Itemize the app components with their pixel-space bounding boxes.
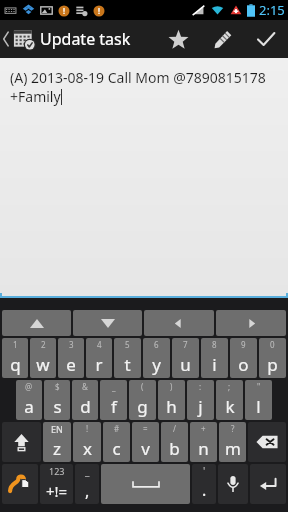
staticText: ; [228, 381, 231, 392]
staticText: $ [55, 381, 60, 392]
staticText: 2:15 [259, 1, 285, 19]
staticText: ' [203, 464, 206, 478]
button[interactable]: / [161, 422, 188, 462]
staticText: j [198, 395, 203, 418]
staticText: n [198, 437, 209, 460]
button[interactable]: Backspace [248, 422, 286, 462]
staticText: / [173, 423, 176, 434]
button[interactable]: _ [75, 464, 99, 504]
button[interactable]: 9 [230, 338, 257, 378]
button[interactable]: : [187, 380, 214, 420]
button[interactable]: ; [216, 380, 243, 420]
staticText: +!= [46, 481, 68, 501]
staticText: @ [25, 381, 33, 392]
button[interactable]: Edit [200, 20, 244, 58]
button[interactable]: 3 [58, 338, 84, 378]
staticText: ( [141, 381, 144, 392]
staticText: f [111, 395, 117, 418]
staticText: e [66, 353, 76, 376]
button[interactable]: 4 [86, 338, 112, 378]
staticText: z [53, 437, 61, 460]
staticText: t [124, 353, 131, 376]
staticText: k [225, 395, 235, 418]
staticText: 7 [183, 339, 188, 350]
staticText: + [201, 423, 206, 434]
staticText: v [141, 437, 150, 460]
staticText: s [53, 395, 62, 418]
staticText: ! [86, 423, 89, 434]
staticText: = [143, 423, 148, 434]
button[interactable]: Enter [250, 464, 286, 504]
button[interactable]: " [245, 380, 272, 420]
button[interactable]: 7 [172, 338, 199, 378]
staticText: _ [112, 381, 116, 392]
button[interactable]: Done [244, 20, 288, 58]
button[interactable]: 0 [259, 338, 286, 378]
staticText: 9 [241, 339, 246, 350]
staticText: 5 [125, 339, 130, 350]
button[interactable]: 1 [2, 338, 28, 378]
button[interactable]: 2 [30, 338, 56, 378]
button[interactable]: Left [144, 310, 214, 336]
button[interactable]: _ [100, 380, 127, 420]
staticText: +Family [10, 87, 61, 106]
staticText: 1 [13, 339, 18, 350]
button[interactable]: $ [44, 380, 70, 420]
button[interactable]: EN [43, 422, 71, 462]
button[interactable]: ) [158, 380, 185, 420]
staticText: u [180, 353, 191, 376]
staticText: 6 [154, 339, 159, 350]
staticText: 2 [41, 339, 46, 350]
staticText: w [36, 353, 50, 376]
button[interactable]: ( [129, 380, 156, 420]
button[interactable]: 8 [201, 338, 228, 378]
button[interactable]: # [103, 422, 130, 462]
staticText: h [166, 395, 177, 418]
staticText: m [225, 437, 241, 460]
button[interactable]: Shift [2, 422, 41, 462]
staticText: x [83, 437, 92, 460]
button[interactable]: Right [216, 310, 286, 336]
button[interactable]: Up [2, 310, 71, 336]
button[interactable]: & [72, 380, 98, 420]
staticText: (A) 2013-08-19 Call Mom @7890815178 [10, 68, 266, 87]
button[interactable]: = [132, 422, 159, 462]
button[interactable]: 5 [114, 338, 141, 378]
staticText: ? [231, 423, 235, 434]
staticText: g [137, 395, 148, 418]
button[interactable]: Gesture typing [2, 464, 38, 504]
button[interactable]: Priority star [156, 20, 200, 58]
button[interactable]: @ [16, 380, 42, 420]
button[interactable]: ' [192, 464, 216, 504]
staticText: ) [170, 381, 173, 392]
staticText: # [114, 423, 120, 434]
staticText: 4 [97, 339, 102, 350]
staticText: 3 [69, 339, 74, 350]
staticText: p [267, 353, 278, 376]
button[interactable]: Space [101, 464, 190, 504]
staticText: r [95, 353, 103, 376]
button[interactable]: 123 [40, 464, 73, 504]
staticText: y [152, 353, 161, 376]
staticText: b [169, 437, 180, 460]
button[interactable]: ! [73, 422, 101, 462]
button[interactable]: (A) 2013-08-19 Call Mom @7890815178 [0, 58, 288, 298]
staticText: d [80, 395, 91, 418]
button[interactable]: Navigate up [0, 27, 42, 51]
button[interactable]: Down [73, 310, 142, 336]
staticText: o [238, 353, 249, 376]
staticText: 123 [49, 465, 65, 477]
staticText: i [212, 353, 217, 376]
button[interactable]: Voice input [218, 464, 248, 504]
button[interactable]: + [190, 422, 217, 462]
button[interactable]: ? [219, 422, 246, 462]
button[interactable]: 6 [143, 338, 170, 378]
staticText: 0 [270, 339, 275, 350]
staticText: c [112, 437, 121, 460]
staticText: " [257, 381, 261, 392]
staticText: . [202, 479, 207, 501]
staticText: Update task [40, 28, 131, 50]
staticText: : [199, 381, 202, 392]
staticText: q [10, 353, 21, 376]
staticText: EN [51, 423, 63, 435]
